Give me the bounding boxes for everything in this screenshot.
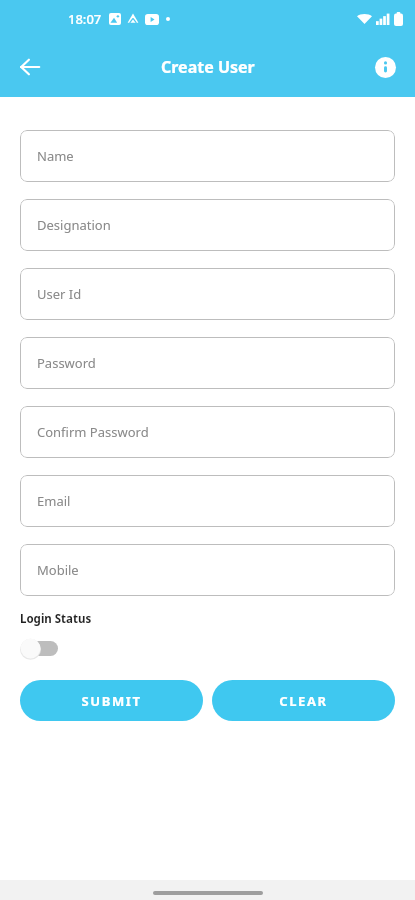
staticText: CLEAR	[279, 692, 328, 710]
staticText: Name	[37, 147, 74, 165]
staticText: Mobile	[37, 561, 79, 579]
button[interactable]: Designation	[20, 199, 395, 251]
button[interactable]: Mobile	[20, 544, 395, 596]
staticText: 18:07	[68, 10, 102, 28]
staticText: Login Status	[20, 611, 92, 627]
button[interactable]: Info	[368, 50, 402, 84]
staticText: Designation	[37, 216, 111, 234]
button[interactable]: Email	[20, 475, 395, 527]
staticText: Email	[37, 492, 71, 510]
staticText: Create User	[161, 56, 255, 78]
staticText: Confirm Password	[37, 423, 149, 441]
button[interactable]: Back	[10, 47, 50, 87]
button[interactable]: SUBMIT	[20, 680, 203, 721]
button[interactable]: Name	[20, 130, 395, 182]
button[interactable]: Confirm Password	[20, 406, 395, 458]
staticText: SUBMIT	[81, 692, 142, 710]
button[interactable]: CLEAR	[212, 680, 395, 721]
staticText: User Id	[37, 285, 82, 303]
button[interactable]: Password	[20, 337, 395, 389]
button[interactable]: User Id	[20, 268, 395, 320]
staticText: Password	[37, 354, 96, 372]
button[interactable]: Login status toggle	[20, 635, 64, 661]
